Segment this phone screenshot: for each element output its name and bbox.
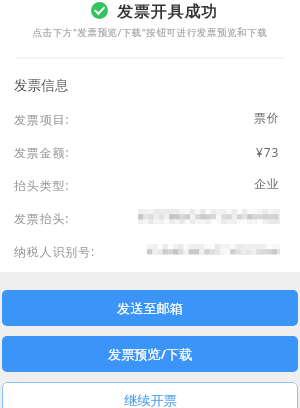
staticText: 发票信息 <box>14 77 69 94</box>
staticText: 发票预览/下载 <box>108 345 193 363</box>
staticText: 点击下方"发票预览/下载"按钮可进行发票预览和下载 <box>0 26 300 39</box>
button[interactable]: 继续开票 <box>2 382 298 408</box>
button[interactable]: 发票预览/下载 <box>2 336 298 372</box>
staticText: 发票开具成功 <box>117 2 218 20</box>
staticText: 票价 <box>254 111 280 126</box>
staticText: 继续开票 <box>124 392 177 408</box>
staticText: 纳税人识别号: <box>14 243 96 259</box>
staticText: 抬头类型: <box>14 177 70 193</box>
button[interactable]: 发送至邮箱 <box>2 290 298 326</box>
staticText: 发票金额: <box>14 144 70 160</box>
staticText: 发票项目: <box>14 111 70 127</box>
staticText: 企业 <box>254 177 280 192</box>
staticText: ¥73 <box>256 144 280 160</box>
staticText: 发票抬头: <box>14 210 70 226</box>
staticText: 发送至邮箱 <box>117 300 183 317</box>
